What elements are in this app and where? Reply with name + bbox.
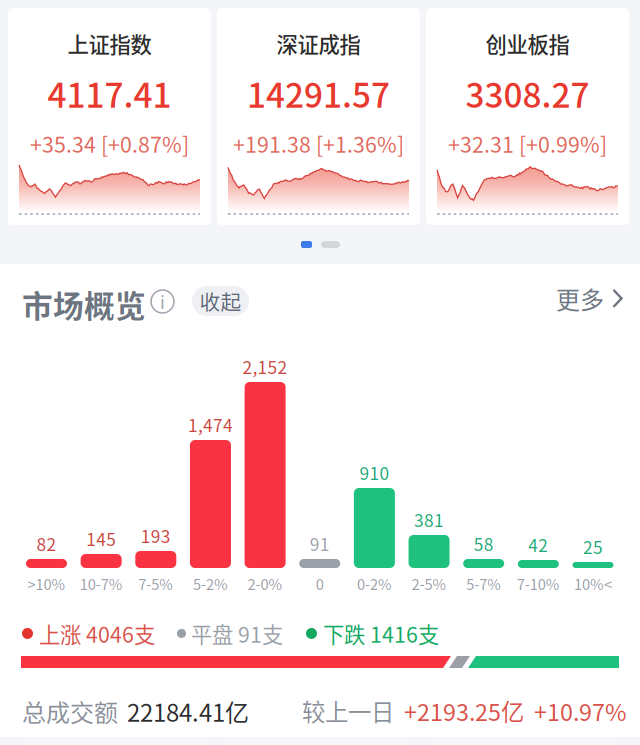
- staticText: 总成交额: [22, 694, 118, 729]
- staticText: 10-7%: [80, 573, 123, 594]
- staticText: 平盘 91支: [191, 618, 283, 649]
- staticText: 5-2%: [193, 573, 228, 594]
- button[interactable]: Info: [151, 290, 174, 313]
- staticText: 22184.41亿: [127, 694, 249, 729]
- staticText: 145: [86, 526, 116, 551]
- staticText: +191.38 [+1.36%]: [233, 128, 404, 159]
- staticText: 193: [141, 523, 171, 548]
- staticText: 910: [359, 460, 389, 485]
- button[interactable]: 更多: [556, 281, 624, 316]
- staticText: 14291.57: [247, 69, 390, 117]
- staticText: 58: [474, 531, 494, 556]
- staticText: +2193.25亿: [404, 694, 524, 728]
- staticText: 上涨 4046支: [39, 618, 155, 649]
- staticText: 42: [528, 532, 548, 557]
- staticText: 收起: [199, 286, 241, 316]
- staticText: 4117.41: [47, 69, 171, 117]
- staticText: >10%: [27, 573, 65, 594]
- staticText: 7-10%: [517, 573, 560, 594]
- staticText: 2,152: [243, 354, 288, 379]
- staticText: 上证指数: [67, 28, 151, 59]
- staticText: 1,474: [188, 412, 233, 437]
- staticText: 市场概览: [22, 282, 146, 326]
- staticText: 7-5%: [138, 573, 173, 594]
- staticText: +32.31 [+0.99%]: [448, 128, 607, 159]
- staticText: 2-0%: [248, 573, 283, 594]
- staticText: 5-7%: [466, 573, 501, 594]
- staticText: 82: [36, 531, 56, 556]
- button[interactable]: 创业板指: [426, 8, 629, 225]
- staticText: 2-5%: [412, 573, 447, 594]
- staticText: 较上一日: [302, 694, 394, 728]
- staticText: 381: [414, 507, 444, 532]
- staticText: 0: [316, 573, 324, 594]
- button[interactable]: 收起: [192, 286, 249, 316]
- staticText: 更多: [556, 281, 604, 316]
- button[interactable]: 上证指数: [8, 8, 211, 225]
- staticText: 3308.27: [465, 69, 589, 117]
- button[interactable]: 深证成指: [217, 8, 420, 225]
- staticText: 25: [583, 534, 603, 559]
- staticText: 深证成指: [276, 28, 360, 59]
- staticText: +35.34 [+0.87%]: [30, 128, 189, 159]
- staticText: 10%<: [574, 573, 612, 594]
- staticText: 下跌 1416支: [323, 618, 439, 649]
- staticText: 91: [310, 531, 330, 556]
- staticText: +10.97%: [534, 694, 626, 728]
- staticText: i: [160, 289, 165, 314]
- staticText: 创业板指: [485, 28, 569, 59]
- staticText: 0-2%: [357, 573, 392, 594]
